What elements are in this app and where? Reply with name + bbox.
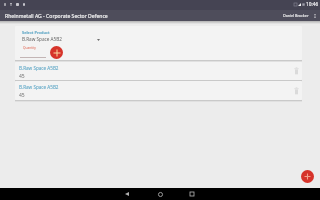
staticText: Rheinmetall AG - Corporate Sector Defenc… <box>5 13 108 20</box>
button[interactable]: Daniel Brocker <box>282 11 310 20</box>
staticText: B.Raw Space A5B2 <box>19 65 59 71</box>
button[interactable]: More options <box>311 12 318 19</box>
button[interactable]: B.Raw Space A5B2 <box>22 36 100 42</box>
staticText: Select Product <box>22 30 50 35</box>
staticText: Daniel Brocker <box>283 13 309 18</box>
staticText: B.Raw Space A5B2 <box>22 36 62 42</box>
button[interactable]: Add product <box>50 46 63 59</box>
button[interactable]: Recent apps <box>184 188 200 200</box>
button[interactable]: Add item <box>301 170 314 183</box>
button[interactable]: B.Raw Space A5B2 <box>15 81 302 100</box>
staticText: 45 <box>19 73 25 80</box>
button[interactable]: Delete <box>291 62 302 80</box>
staticText: B.Raw Space A5B2 <box>19 84 59 90</box>
staticText: 45 <box>19 92 25 99</box>
button[interactable]: Home <box>152 188 168 200</box>
staticText: 10:46 <box>306 1 319 8</box>
button[interactable]: B.Raw Space A5B2 <box>15 62 302 80</box>
button[interactable]: Back <box>119 188 135 200</box>
staticText: Quantity <box>23 46 36 50</box>
button[interactable]: Delete <box>291 81 302 100</box>
